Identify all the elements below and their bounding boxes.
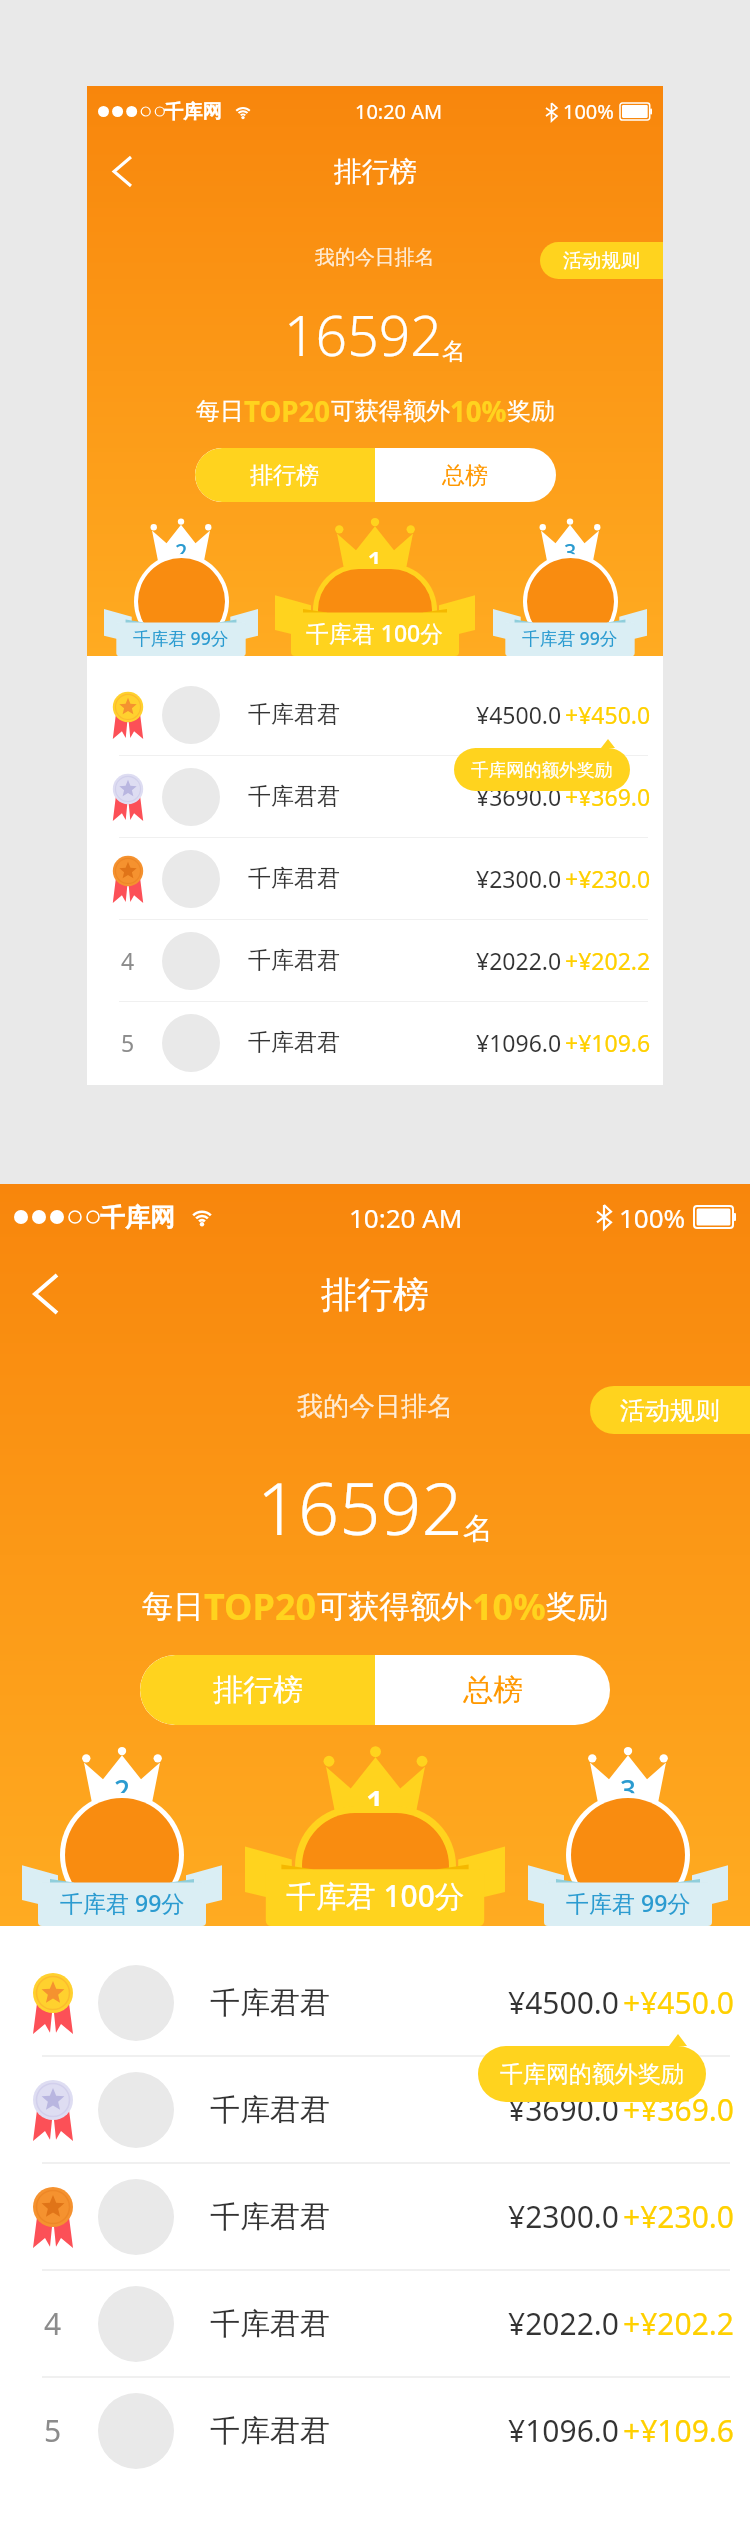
staticText: 总榜 (442, 461, 489, 490)
staticText: 我的今日排名 (297, 1390, 453, 1423)
staticText: ¥3690.0 (508, 2089, 619, 2130)
staticText: +¥230.0 (565, 863, 651, 894)
button[interactable] (138, 558, 225, 645)
staticText: 千库君君 (210, 1984, 330, 2022)
staticText: ¥3690.0 (476, 781, 562, 812)
staticText: ¥1096.0 (508, 2410, 619, 2451)
staticText: ¥2022.0 (508, 2303, 619, 2344)
staticText: 10% (472, 1582, 546, 1631)
staticText: 千库君 99分 (522, 626, 618, 650)
staticText: 千库网的额外奖励 (500, 2060, 684, 2089)
button[interactable]: 千库君君 (87, 674, 663, 755)
button[interactable]: 千库网的额外奖励 (471, 748, 613, 791)
button[interactable]: 5 (87, 1002, 663, 1083)
staticText: 千库君君 (248, 1028, 341, 1057)
staticText: +¥109.6 (565, 1027, 651, 1058)
staticText: 千库网的额外奖励 (471, 759, 613, 781)
staticText: ¥2022.0 (476, 945, 562, 976)
staticText: +¥369.0 (565, 781, 651, 812)
staticText: 千库君 100分 (306, 617, 444, 648)
staticText: +¥109.6 (623, 2410, 734, 2451)
staticText: 4 (44, 2303, 62, 2344)
staticText: +¥450.0 (565, 699, 651, 730)
button[interactable] (571, 1798, 685, 1912)
button[interactable]: 千库君君 (87, 756, 663, 837)
button[interactable]: 4 (87, 920, 663, 1001)
staticText: 10% (450, 392, 507, 430)
staticText: 我的今日排名 (315, 245, 435, 270)
staticText: 1 (367, 542, 383, 580)
button[interactable] (65, 1798, 179, 1912)
staticText: 千库君君 (210, 2091, 330, 2129)
staticText: TOP20 (244, 392, 331, 430)
button[interactable] (302, 1813, 449, 1919)
button[interactable]: 总榜 (375, 1655, 610, 1725)
staticText: 可获得额外 (317, 1587, 472, 1626)
staticText: TOP20 (204, 1582, 317, 1631)
staticText: 千库君君 (210, 2305, 330, 2343)
staticText: 千库网 (100, 1202, 175, 1233)
button[interactable]: 排行榜 (195, 448, 375, 502)
staticText: 10:20 AM (349, 1200, 463, 1235)
button[interactable]: 活动规则 (590, 1386, 750, 1434)
staticText: 千库君君 (210, 2198, 330, 2236)
staticText: 千库网 (164, 100, 222, 124)
staticText: 16592 (284, 297, 442, 372)
staticText: +¥369.0 (623, 2089, 734, 2130)
staticText: ¥2300.0 (508, 2196, 619, 2237)
staticText: 千库君君 (248, 700, 341, 729)
staticText: 总榜 (463, 1671, 523, 1709)
button[interactable]: 总榜 (375, 448, 556, 502)
staticText: 名 (442, 337, 466, 366)
button[interactable]: Back (10, 1258, 82, 1330)
button[interactable]: 千库君君 (0, 1950, 750, 2055)
button[interactable]: 千库君君 (0, 2057, 750, 2162)
button[interactable]: 千库君君 (87, 838, 663, 919)
staticText: 活动规则 (620, 1395, 720, 1426)
button[interactable]: 5 (0, 2378, 750, 2483)
staticText: 3 (620, 1771, 637, 1809)
staticText: 10:20 AM (355, 98, 443, 125)
staticText: 每日 (196, 396, 244, 426)
button[interactable]: Back (95, 144, 150, 199)
staticText: 排行榜 (334, 154, 417, 189)
staticText: 千库君君 (248, 782, 341, 811)
staticText: 名 (463, 1510, 493, 1548)
staticText: ¥4500.0 (476, 699, 562, 730)
button[interactable]: 千库网的额外奖励 (500, 2046, 684, 2102)
staticText: +¥202.2 (565, 945, 651, 976)
staticText: 5 (44, 2410, 62, 2451)
button[interactable]: 活动规则 (540, 242, 663, 279)
staticText: 千库君君 (210, 2412, 330, 2450)
button[interactable] (527, 558, 614, 645)
staticText: ¥2300.0 (476, 863, 562, 894)
staticText: 千库君君 (248, 864, 341, 893)
staticText: 排行榜 (250, 461, 320, 490)
staticText: +¥230.0 (623, 2196, 734, 2237)
staticText: 每日 (142, 1587, 204, 1626)
staticText: ¥1096.0 (476, 1027, 562, 1058)
staticText: +¥450.0 (623, 1982, 734, 2023)
button[interactable]: 千库君君 (0, 2164, 750, 2269)
staticText: +¥202.2 (623, 2303, 734, 2344)
staticText: 排行榜 (213, 1671, 303, 1709)
button[interactable]: 排行榜 (140, 1655, 375, 1725)
staticText: 5 (121, 1027, 135, 1058)
staticText: 千库君 99分 (133, 626, 229, 650)
button[interactable]: 4 (0, 2271, 750, 2376)
staticText: 奖励 (507, 396, 555, 426)
staticText: 千库君君 (248, 946, 341, 975)
staticText: ¥4500.0 (508, 1982, 619, 2023)
staticText: 可获得额外 (331, 396, 450, 426)
staticText: 千库君 100分 (286, 1875, 465, 1916)
staticText: 16592 (257, 1458, 463, 1556)
staticText: 千库君 99分 (60, 1887, 185, 1918)
staticText: 3 (564, 537, 577, 566)
staticText: 2 (114, 1771, 131, 1809)
staticText: 2 (175, 537, 188, 566)
staticText: 排行榜 (321, 1272, 429, 1317)
button[interactable] (318, 569, 432, 651)
staticText: 活动规则 (563, 249, 640, 273)
staticText: 100% (619, 1200, 686, 1235)
staticText: 4 (121, 945, 135, 976)
